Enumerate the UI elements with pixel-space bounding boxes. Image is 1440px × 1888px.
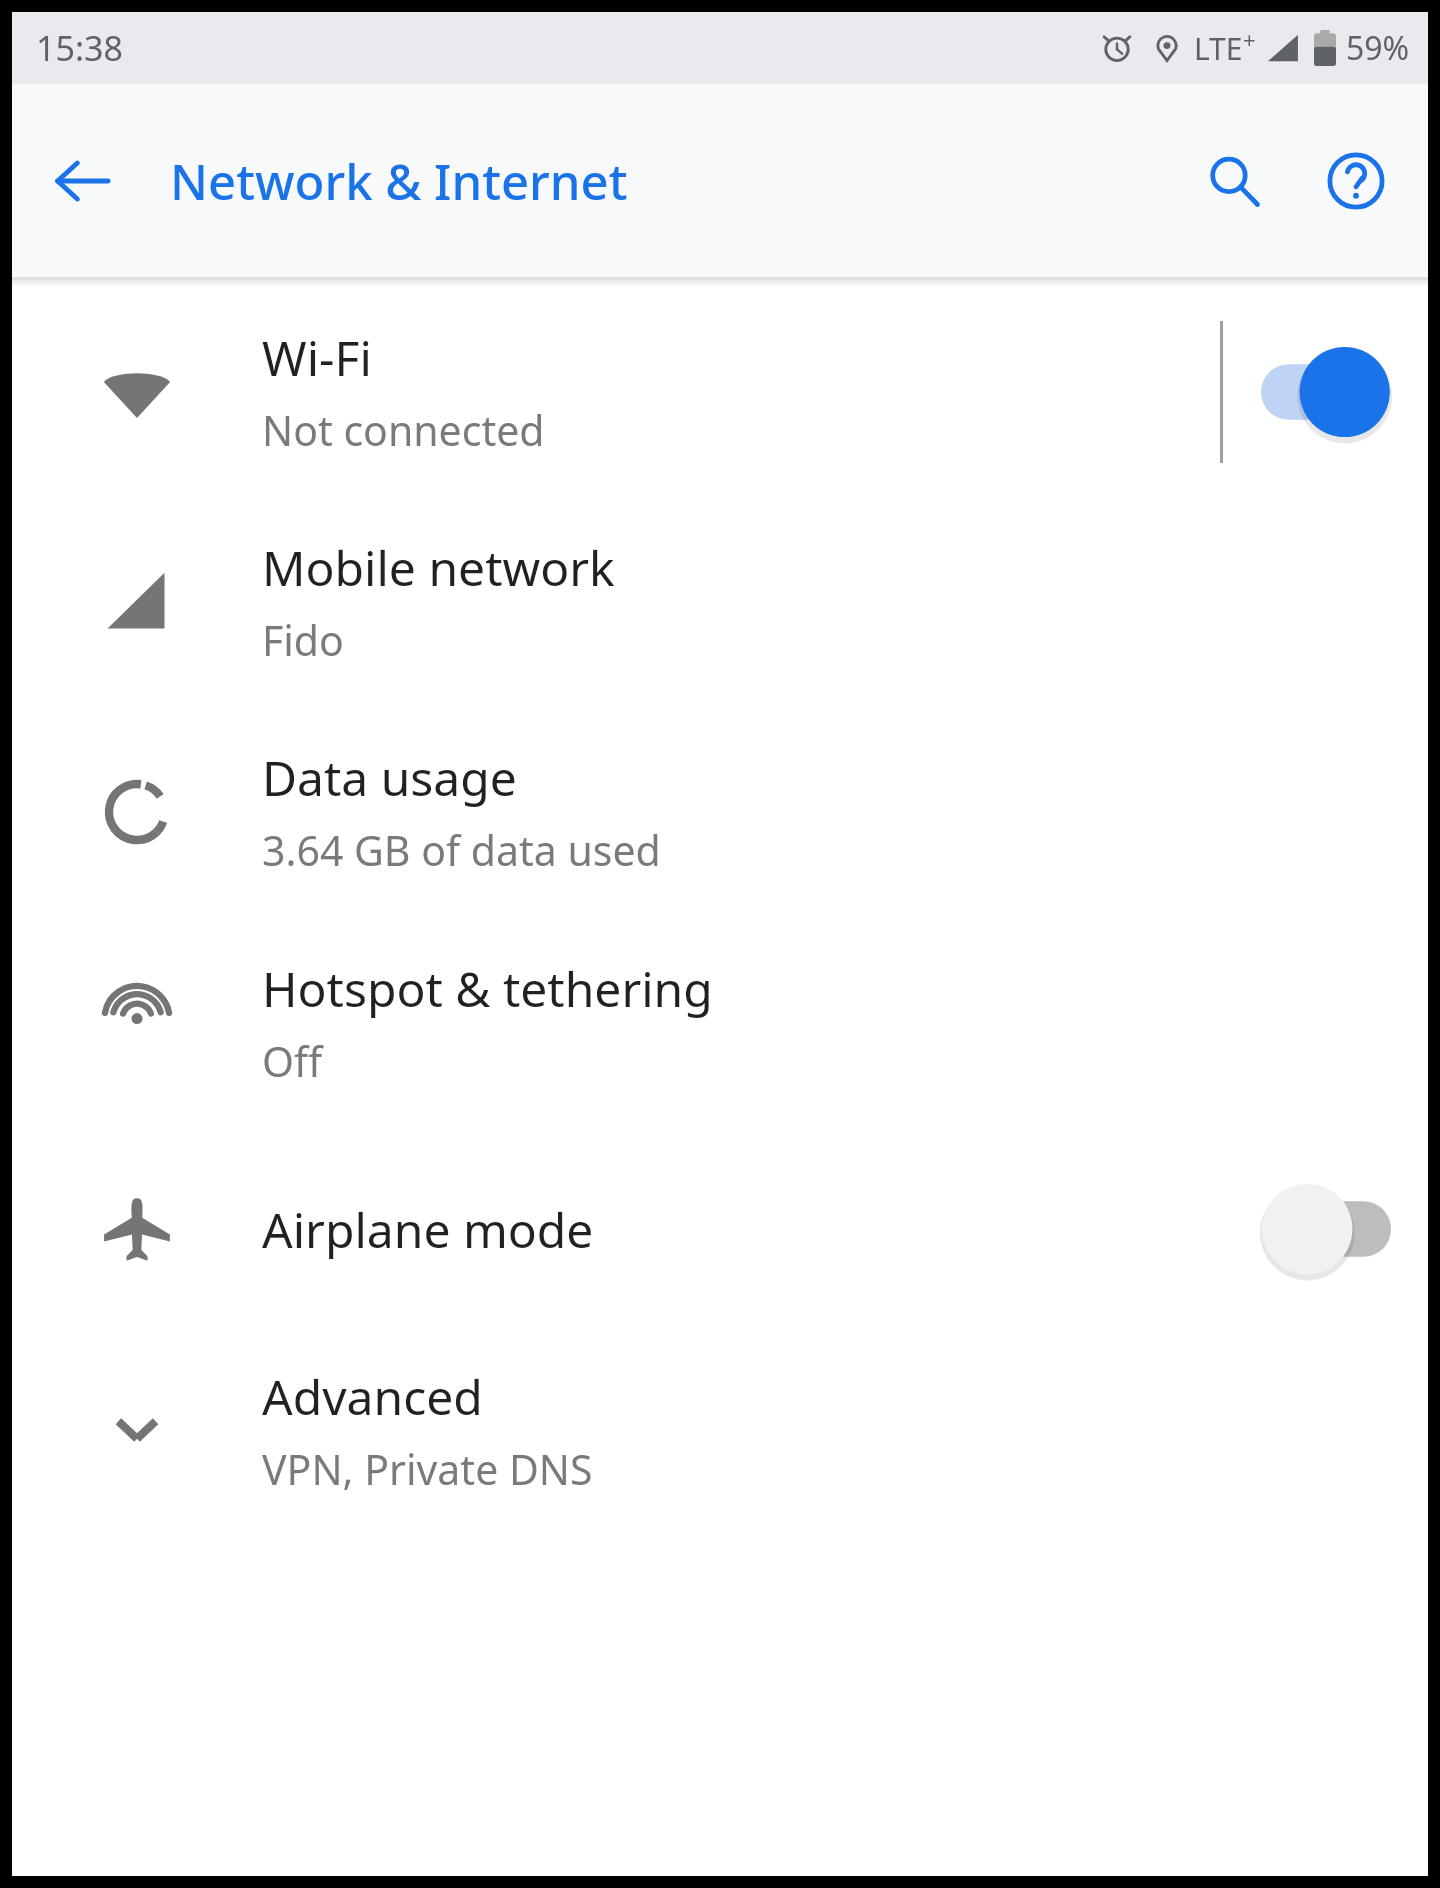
button[interactable]: Advanced (12, 1330, 1428, 1530)
button[interactable]: Data usage (12, 706, 1428, 917)
button[interactable]: Hotspot & tethering (12, 917, 1428, 1128)
button[interactable]: Mobile network (12, 496, 1428, 706)
staticText: Advanced (262, 1364, 483, 1429)
button[interactable]: Wi-Fi (12, 287, 1428, 496)
staticText: Off (262, 1033, 323, 1089)
staticText: Fido (262, 612, 344, 668)
button[interactable]: Help (1308, 133, 1404, 229)
button[interactable]: Airplane mode (12, 1128, 1428, 1330)
staticText: 3.64 GB of data used (262, 822, 661, 878)
staticText: Mobile network (262, 535, 615, 600)
staticText: VPN, Private DNS (262, 1441, 593, 1497)
staticText: LTE (1194, 28, 1243, 69)
staticText: Wi-Fi (262, 325, 372, 390)
button[interactable]: Back (34, 133, 130, 229)
staticText: + (1243, 24, 1256, 54)
staticText: Hotspot & tethering (262, 956, 713, 1021)
button[interactable]: Airplane mode toggle (1223, 1159, 1428, 1299)
staticText: 15:38 (36, 25, 123, 71)
button[interactable]: Search (1186, 133, 1282, 229)
button[interactable]: Wi-Fi toggle (1223, 322, 1428, 462)
staticText: Data usage (262, 745, 517, 810)
staticText: Airplane mode (262, 1197, 594, 1262)
staticText: Not connected (262, 402, 545, 458)
staticText: 59% (1346, 26, 1410, 70)
staticText: Network & Internet (170, 148, 628, 215)
